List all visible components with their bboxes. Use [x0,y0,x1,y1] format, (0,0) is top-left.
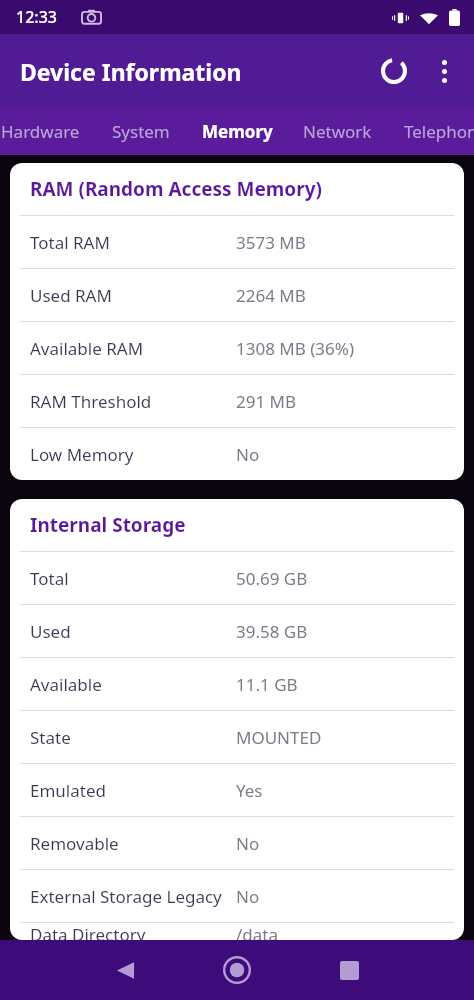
staticText: Telephony [404,120,474,143]
staticText: No [236,443,260,466]
button[interactable]: Total [10,552,464,604]
staticText: RAM Threshold [30,390,152,413]
button[interactable]: Network [292,108,382,155]
button[interactable]: Available [10,658,464,710]
button[interactable]: Recent apps [322,943,376,997]
staticText: Emulated [30,779,106,802]
button[interactable]: Low Memory [10,428,464,480]
staticText: Network [303,120,372,143]
staticText: Used [30,620,71,643]
staticText: Available [30,673,102,696]
staticText: Device Information [20,56,242,87]
staticText: 291 MB [236,390,297,413]
button[interactable]: RAM Threshold [10,375,464,427]
staticText: 11.1 GB [236,673,298,696]
button[interactable]: State [10,711,464,763]
button[interactable]: Data Directory [10,923,464,940]
button[interactable]: Refresh [370,47,418,95]
staticText: 39.58 GB [236,620,308,643]
staticText: 12:33 [16,6,57,28]
staticText: Data Directory [30,923,146,940]
staticText: No [236,832,260,855]
button[interactable]: System [100,108,182,155]
button[interactable]: Used RAM [10,269,464,321]
staticText: Internal Storage [30,512,186,538]
staticText: 3573 MB [236,231,306,254]
button[interactable]: Hardware [0,108,86,155]
staticText: 50.69 GB [236,567,308,590]
staticText: Removable [30,832,119,855]
button[interactable]: Available RAM [10,322,464,374]
staticText: Memory [202,120,273,143]
button[interactable]: Total RAM [10,216,464,268]
staticText: Total RAM [30,231,110,254]
staticText: External Storage Legacy [30,885,222,908]
staticText: State [30,726,71,749]
button[interactable]: Home [210,943,264,997]
button[interactable]: Used [10,605,464,657]
button[interactable]: More options [420,47,468,95]
staticText: RAM (Random Access Memory) [30,176,323,202]
staticText: No [236,885,260,908]
staticText: Used RAM [30,284,112,307]
staticText: Total [30,567,69,590]
button[interactable]: External Storage Legacy [10,870,464,922]
staticText: Hardware [1,120,80,143]
staticText: 2264 MB [236,284,306,307]
button[interactable]: Removable [10,817,464,869]
button[interactable]: Emulated [10,764,464,816]
button[interactable]: Memory [190,108,284,155]
staticText: Yes [236,779,263,802]
staticText: /data [236,923,278,940]
staticText: 1308 MB (36%) [236,337,354,360]
button[interactable]: Back [98,943,152,997]
staticText: Available RAM [30,337,144,360]
staticText: MOUNTED [236,726,322,749]
staticText: System [112,120,170,143]
staticText: Low Memory [30,443,134,466]
button[interactable]: Telephony [398,108,474,155]
